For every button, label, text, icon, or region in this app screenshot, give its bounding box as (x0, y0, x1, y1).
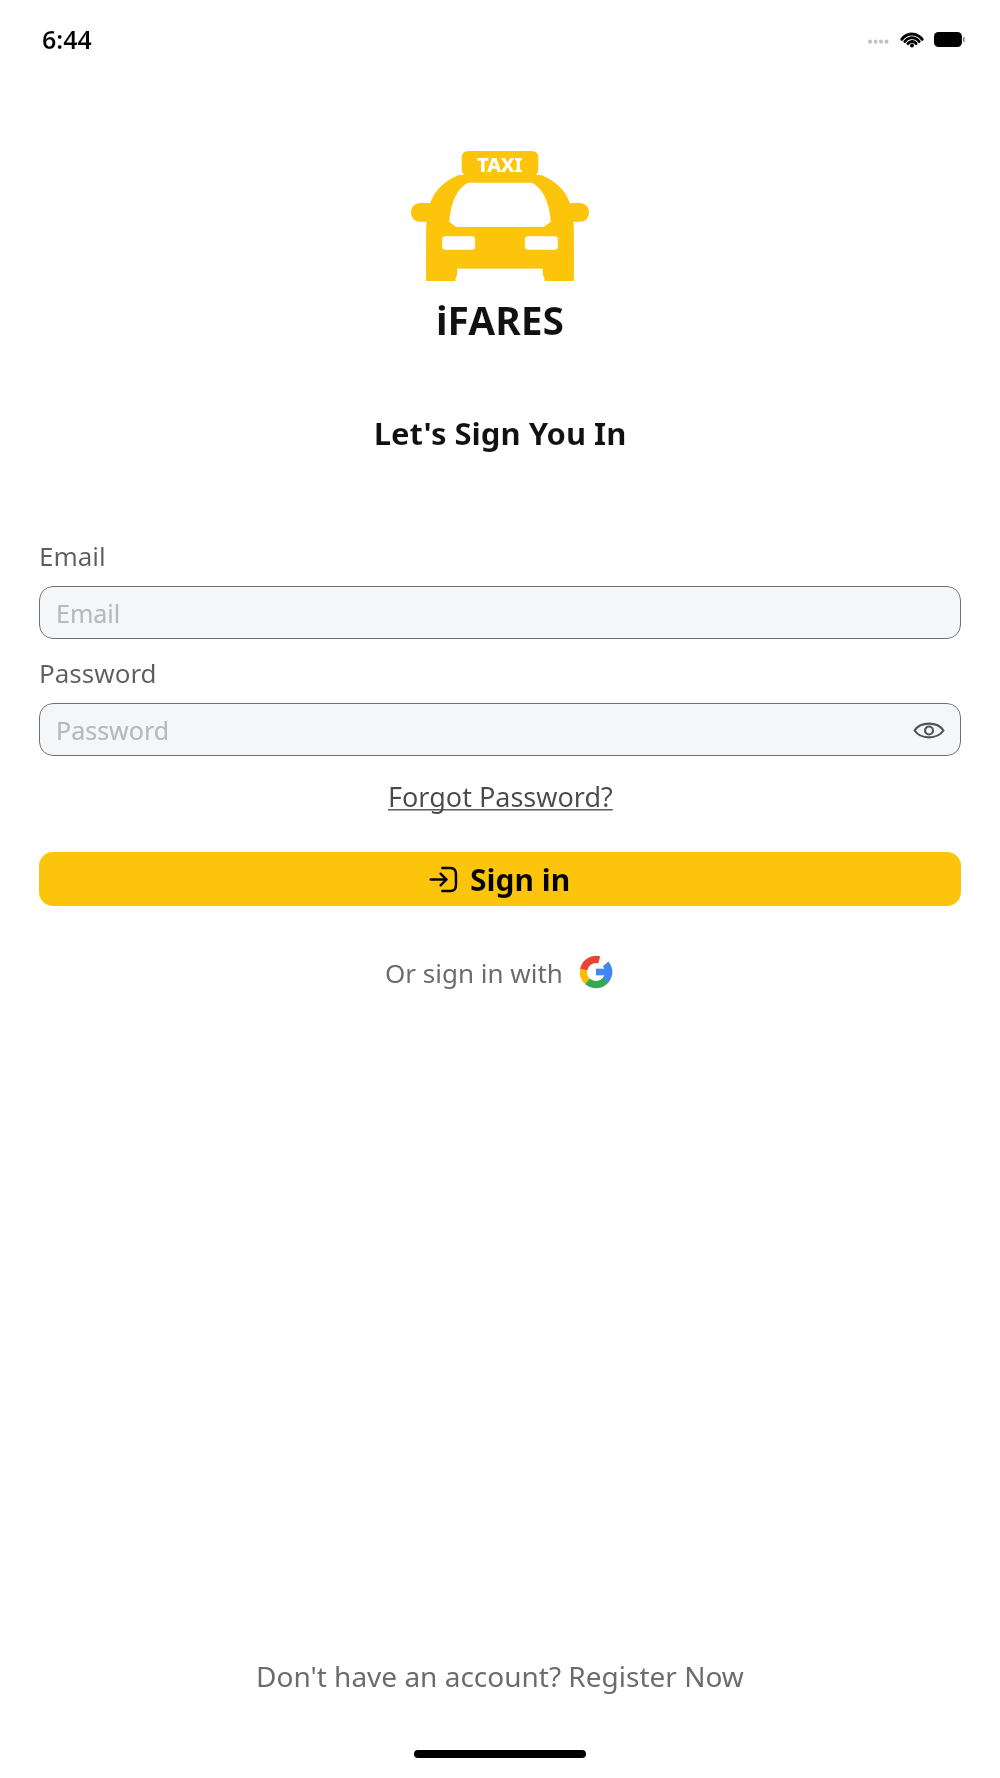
staticText: Let's Sign You In (0, 412, 1000, 454)
staticText: Email (39, 538, 106, 573)
button[interactable]: Forgot Password? (384, 774, 617, 819)
staticText: Email (56, 596, 121, 630)
button[interactable]: Don't have an account? Register Now (0, 1651, 1000, 1701)
staticText: iFARES (0, 293, 1000, 346)
staticText: Forgot Password? (388, 778, 613, 815)
button[interactable]: Email (39, 586, 961, 639)
button[interactable]: Show password (909, 710, 949, 750)
button[interactable]: Password (39, 703, 961, 756)
staticText: 6:44 (42, 22, 92, 56)
staticText: Sign in (470, 859, 571, 900)
staticText: Password (39, 655, 157, 690)
staticText: TAXI (477, 151, 523, 178)
staticText: Don't have an account? Register Now (256, 1657, 744, 1695)
button[interactable]: Sign in with Google (577, 953, 615, 991)
staticText: Or sign in with (385, 955, 563, 990)
staticText: Password (56, 713, 170, 747)
button[interactable]: Sign in (39, 852, 961, 906)
